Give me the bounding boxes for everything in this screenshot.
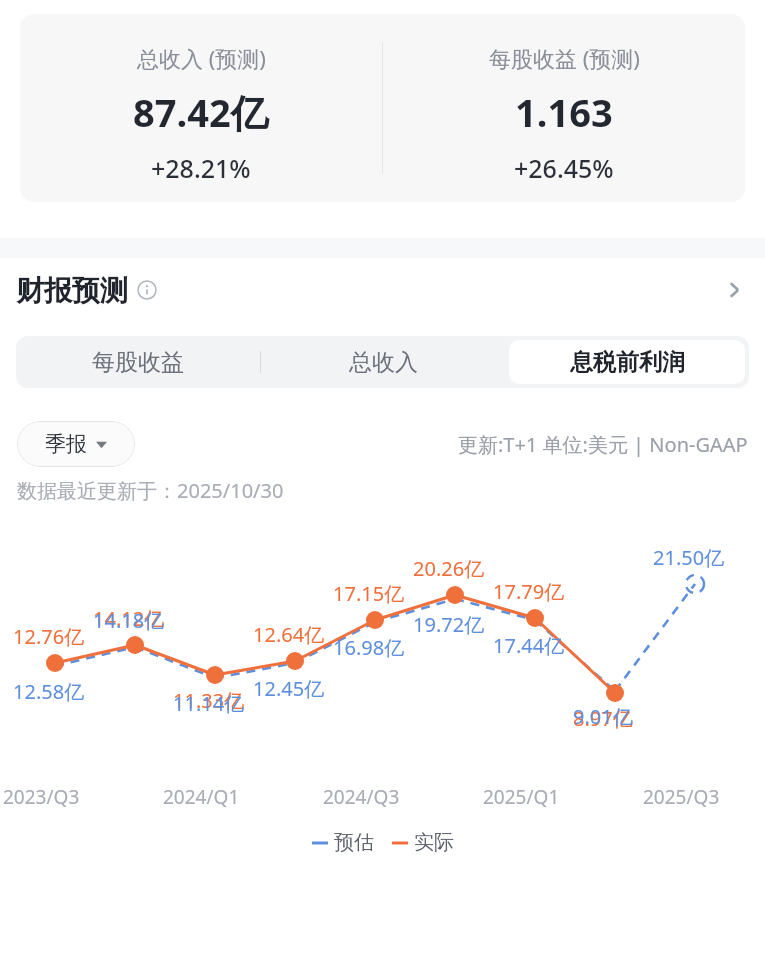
button[interactable]: 季报 bbox=[17, 421, 135, 467]
button[interactable]: 总收入 bbox=[261, 336, 505, 388]
staticText: 12.58亿 bbox=[13, 678, 85, 705]
staticText: 19.72亿 bbox=[413, 611, 485, 638]
staticText: 2025/Q1 bbox=[483, 784, 560, 810]
staticText: 11.33亿 bbox=[173, 687, 245, 714]
staticText: 财报预测 bbox=[16, 273, 128, 308]
staticText: 12.76亿 bbox=[13, 623, 85, 650]
staticText: 总收入 (预测) bbox=[137, 43, 266, 73]
staticText: 每股收益 bbox=[92, 348, 184, 377]
staticText: 21.50亿 bbox=[653, 544, 725, 571]
staticText: 1.163 bbox=[515, 86, 613, 138]
staticText: 实际 bbox=[414, 830, 454, 855]
staticText: 9.01亿 bbox=[573, 703, 633, 730]
button[interactable]: 每股收益 bbox=[16, 336, 260, 388]
staticText: 17.44亿 bbox=[493, 632, 565, 659]
staticText: 数据最近更新于：2025/10/30 bbox=[17, 477, 284, 504]
staticText: 2024/Q1 bbox=[163, 784, 240, 810]
staticText: 11.14亿 bbox=[173, 690, 245, 717]
staticText: 12.64亿 bbox=[253, 621, 325, 648]
staticText: 17.15亿 bbox=[333, 580, 405, 607]
other: Info bbox=[137, 280, 157, 300]
staticText: 每股收益 (预测) bbox=[489, 43, 640, 73]
staticText: 更新:T+1 单位:美元 | Non-GAAP bbox=[458, 431, 748, 458]
staticText: 17.79亿 bbox=[493, 578, 565, 605]
staticText: 12.45亿 bbox=[253, 675, 325, 702]
staticText: 14.12亿 bbox=[93, 605, 165, 632]
staticText: 息税前利润 bbox=[570, 348, 685, 377]
button[interactable]: Open details bbox=[721, 276, 749, 304]
staticText: 8.97亿 bbox=[573, 705, 633, 732]
staticText: 预估 bbox=[334, 830, 374, 855]
staticText: +26.45% bbox=[514, 151, 614, 185]
button[interactable]: 总收入 (预测) bbox=[20, 14, 745, 202]
staticText: 14.18亿 bbox=[93, 607, 165, 634]
staticText: 季报 bbox=[45, 431, 87, 457]
staticText: 2025/Q3 bbox=[643, 784, 720, 810]
staticText: +28.21% bbox=[151, 151, 251, 185]
staticText: 总收入 bbox=[349, 348, 418, 377]
staticText: 20.26亿 bbox=[413, 555, 485, 582]
staticText: 2024/Q3 bbox=[323, 784, 400, 810]
button[interactable]: 息税前利润 bbox=[509, 340, 745, 384]
staticText: 87.42亿 bbox=[133, 86, 269, 138]
staticText: 2023/Q3 bbox=[3, 784, 80, 810]
button[interactable]: 财报预测 bbox=[16, 258, 749, 322]
staticText: 16.98亿 bbox=[333, 634, 405, 661]
